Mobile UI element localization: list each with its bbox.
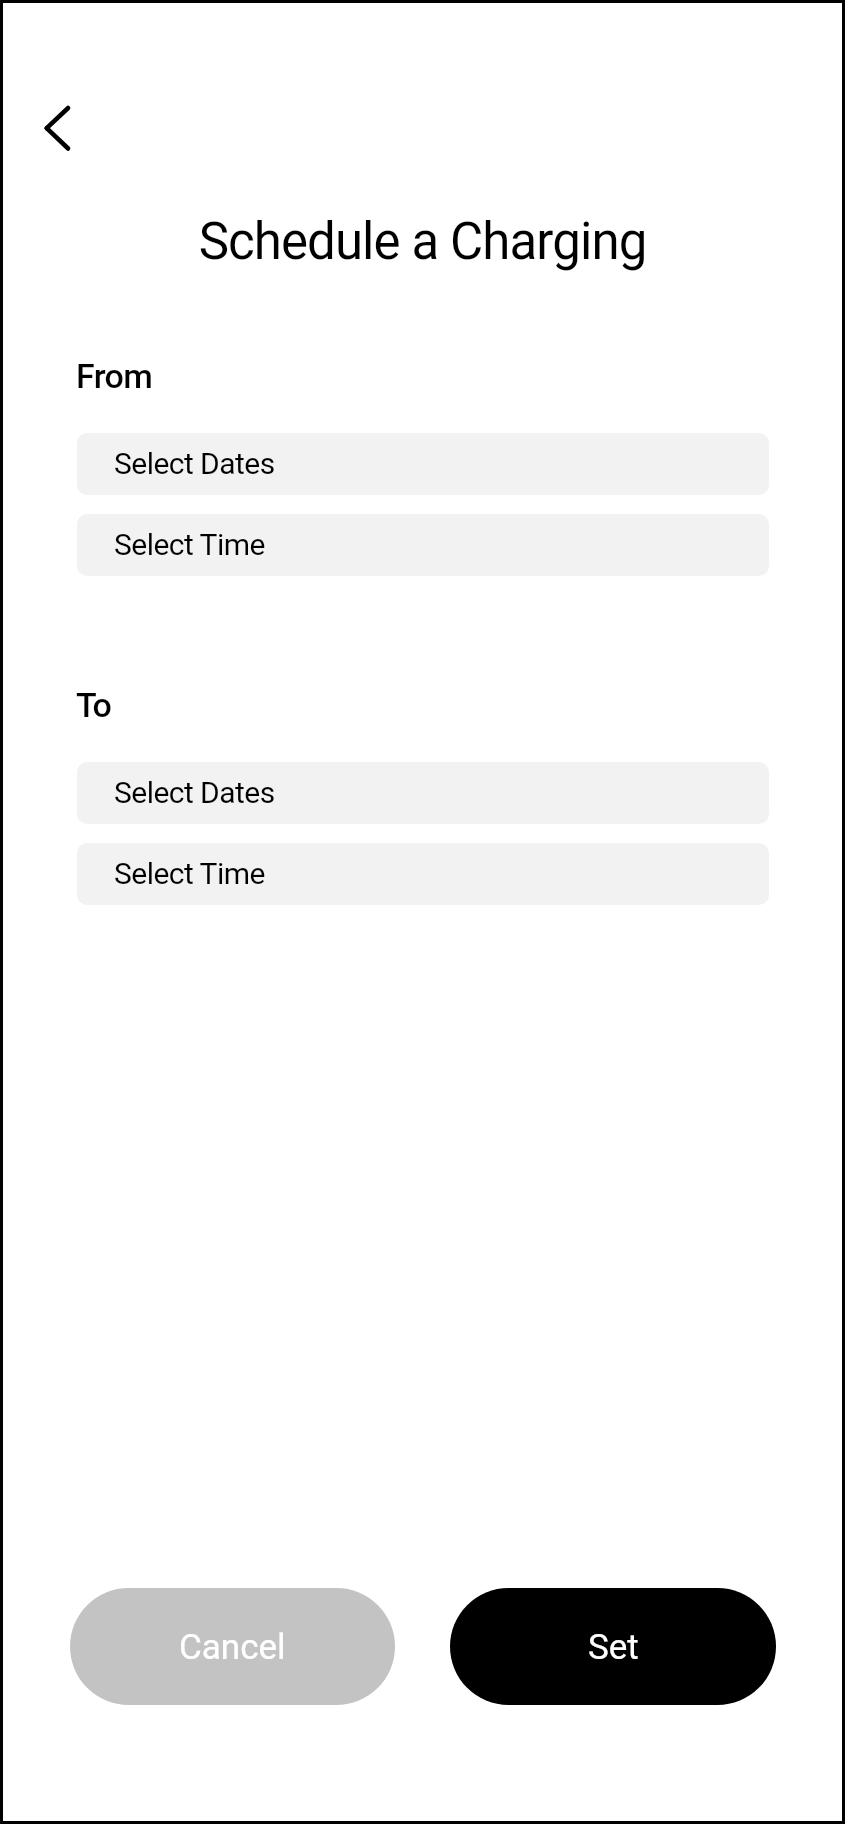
staticText: From: [76, 356, 153, 396]
button[interactable]: Select Time: [77, 514, 769, 576]
button[interactable]: Back: [24, 104, 72, 152]
button[interactable]: Select Time: [77, 843, 769, 905]
button[interactable]: Cancel: [70, 1588, 395, 1705]
staticText: Select Dates: [114, 775, 275, 810]
staticText: To: [76, 685, 112, 725]
button[interactable]: Select Dates: [77, 762, 769, 824]
button[interactable]: Select Dates: [77, 433, 769, 495]
button[interactable]: Set: [450, 1588, 776, 1705]
staticText: Schedule a Charging: [3, 212, 842, 272]
staticText: Cancel: [179, 1627, 286, 1668]
staticText: Select Dates: [114, 446, 275, 481]
staticText: Select Time: [114, 856, 265, 891]
staticText: Select Time: [114, 527, 265, 562]
staticText: Set: [588, 1627, 639, 1668]
